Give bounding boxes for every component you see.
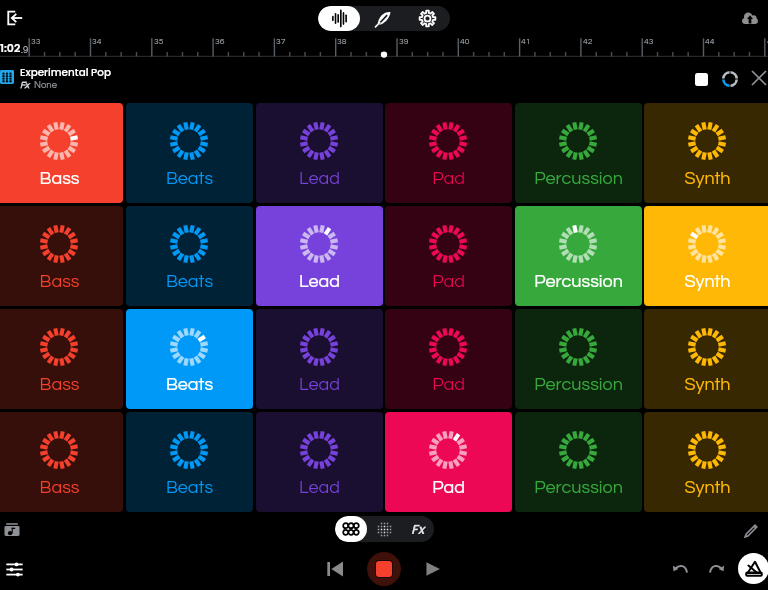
button[interactable]: Lead bbox=[256, 206, 383, 306]
staticText: Beats bbox=[126, 169, 253, 188]
staticText: 45 bbox=[767, 37, 768, 46]
staticText: Fx bbox=[20, 81, 30, 90]
staticText: Bass bbox=[0, 169, 123, 188]
button[interactable]: Synth bbox=[644, 309, 768, 409]
staticText: Synth bbox=[644, 478, 768, 497]
staticText: Bass bbox=[0, 375, 123, 394]
button[interactable]: Live Loops grid bbox=[335, 516, 367, 542]
staticText: Synth bbox=[644, 169, 768, 188]
staticText: Synth bbox=[644, 272, 768, 291]
button[interactable]: Pad bbox=[385, 206, 512, 306]
button[interactable]: Beats bbox=[126, 103, 253, 203]
button[interactable]: Edit bbox=[738, 516, 766, 544]
button[interactable]: Undo bbox=[666, 555, 694, 583]
staticText: Beats bbox=[126, 375, 253, 394]
button[interactable]: Effects bbox=[401, 516, 434, 542]
staticText: 42 bbox=[583, 37, 593, 46]
button[interactable]: Synth bbox=[644, 103, 768, 203]
staticText: Lead bbox=[256, 272, 383, 291]
button[interactable]: Stop cells bbox=[687, 65, 715, 93]
staticText: 38 bbox=[337, 37, 347, 46]
staticText: Beats bbox=[126, 272, 253, 291]
button[interactable]: Tracks view bbox=[367, 516, 401, 542]
staticText: 34 bbox=[92, 37, 102, 46]
button[interactable]: Loop browser bbox=[0, 515, 26, 543]
staticText: Pad bbox=[385, 272, 512, 291]
button[interactable]: Pad bbox=[385, 103, 512, 203]
button[interactable]: Audio recorder bbox=[318, 6, 360, 31]
button[interactable]: Quantization bbox=[716, 65, 744, 93]
staticText: 43 bbox=[644, 37, 654, 46]
staticText: 35 bbox=[154, 37, 164, 46]
button[interactable]: Lead bbox=[256, 412, 383, 512]
staticText: Fx bbox=[411, 520, 425, 538]
button[interactable]: Percussion bbox=[515, 206, 642, 306]
staticText: Lead bbox=[256, 169, 383, 188]
staticText: Pad bbox=[385, 169, 512, 188]
staticText: 39 bbox=[399, 37, 409, 46]
button[interactable]: Play bbox=[419, 555, 447, 583]
staticText: None bbox=[34, 80, 57, 90]
button[interactable]: Bass bbox=[0, 309, 123, 409]
button[interactable]: Bass bbox=[0, 206, 123, 306]
button[interactable]: Pad bbox=[385, 309, 512, 409]
staticText: Percussion bbox=[515, 272, 642, 291]
button[interactable]: Settings bbox=[405, 6, 450, 31]
button[interactable]: Bass bbox=[0, 103, 123, 203]
staticText: Synth bbox=[644, 375, 768, 394]
button[interactable]: Percussion bbox=[515, 412, 642, 512]
button[interactable]: Percussion bbox=[515, 309, 642, 409]
staticText: 40 bbox=[460, 37, 470, 46]
button[interactable]: Lead bbox=[256, 309, 383, 409]
button[interactable]: Lead bbox=[256, 103, 383, 203]
staticText: Percussion bbox=[515, 375, 642, 394]
staticText: Pad bbox=[385, 375, 512, 394]
button[interactable]: Mixer bbox=[0, 555, 28, 583]
button[interactable]: Notes bbox=[360, 6, 405, 31]
staticText: 44 bbox=[705, 37, 715, 46]
button[interactable]: Synth bbox=[644, 206, 768, 306]
button[interactable]: Beats bbox=[126, 206, 253, 306]
button[interactable]: Metronome bbox=[738, 553, 768, 584]
staticText: .9 bbox=[21, 45, 29, 55]
staticText: Percussion bbox=[515, 169, 642, 188]
staticText: 41 bbox=[521, 37, 531, 46]
staticText: Bass bbox=[0, 478, 123, 497]
staticText: Pad bbox=[385, 478, 512, 497]
staticText: 36 bbox=[215, 37, 225, 46]
button[interactable]: Beats bbox=[126, 309, 253, 409]
button[interactable]: Percussion bbox=[515, 103, 642, 203]
staticText: Lead bbox=[256, 375, 383, 394]
staticText: Beats bbox=[126, 478, 253, 497]
button[interactable]: Exit project bbox=[1, 4, 29, 32]
staticText: 1:02 bbox=[0, 40, 21, 55]
staticText: Experimental Pop bbox=[20, 65, 111, 80]
staticText: 37 bbox=[276, 37, 286, 46]
button[interactable]: Redo bbox=[702, 555, 730, 583]
button[interactable]: Beats bbox=[126, 412, 253, 512]
staticText: Lead bbox=[256, 478, 383, 497]
button[interactable]: Bass bbox=[0, 412, 123, 512]
button[interactable]: Close track bbox=[746, 65, 768, 91]
staticText: 33 bbox=[31, 37, 41, 46]
button[interactable]: Upload to cloud bbox=[736, 4, 764, 32]
button[interactable]: Record bbox=[367, 552, 401, 586]
button[interactable]: Pad bbox=[385, 412, 512, 512]
button[interactable]: Synth bbox=[644, 412, 768, 512]
button[interactable]: Go to beginning bbox=[321, 555, 349, 583]
staticText: Bass bbox=[0, 272, 123, 291]
staticText: Percussion bbox=[515, 478, 642, 497]
